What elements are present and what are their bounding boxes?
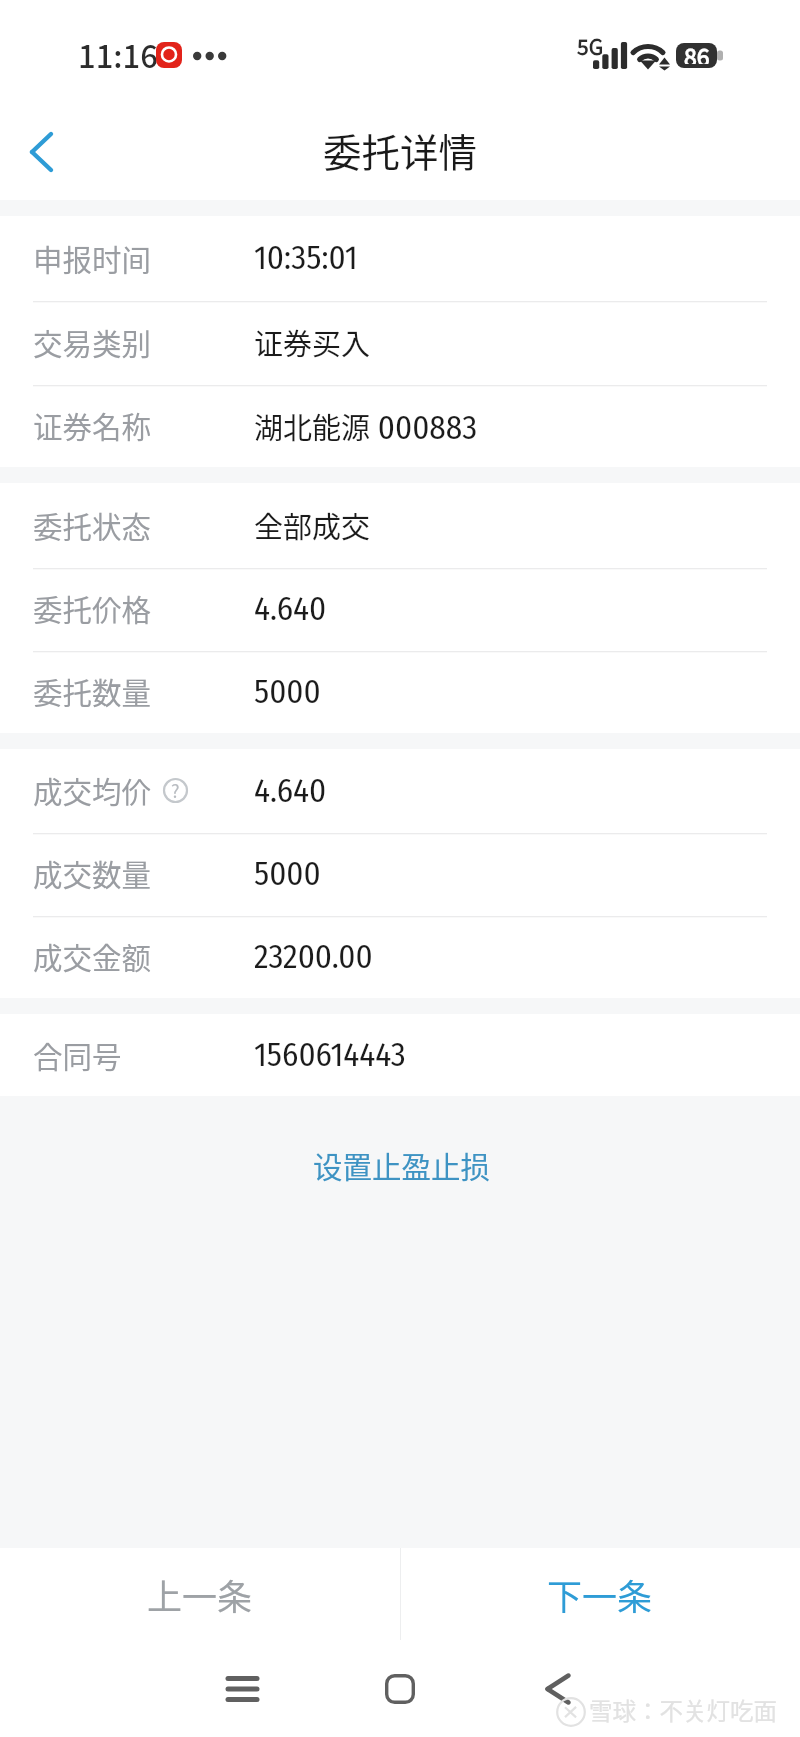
staticText: 5G xyxy=(577,31,604,61)
staticText: 上一条 xyxy=(147,1569,253,1620)
staticText: 下一条 xyxy=(547,1569,653,1620)
button[interactable]: 成交均价 xyxy=(0,749,800,832)
button[interactable]: 合同号 xyxy=(0,1014,800,1096)
staticText: 委托状态 xyxy=(33,504,152,547)
staticText: 5000 xyxy=(254,672,321,712)
button[interactable]: Home xyxy=(362,1651,438,1727)
staticText: 成交金额 xyxy=(33,935,152,978)
staticText: 11:16 xyxy=(78,32,158,77)
button[interactable]: 证券名称 xyxy=(0,384,800,467)
button[interactable]: Back xyxy=(0,100,86,200)
button[interactable]: 委托数量 xyxy=(0,650,800,733)
button[interactable]: 交易类别 xyxy=(0,300,800,384)
staticText: 4.640 xyxy=(254,589,327,629)
staticText: 委托详情 xyxy=(323,122,478,178)
button[interactable]: 下一条 xyxy=(400,1548,800,1640)
button[interactable]: 委托状态 xyxy=(0,483,800,567)
staticText: 23200.00 xyxy=(254,937,373,977)
staticText: 设置止盈止损 xyxy=(313,1144,491,1187)
staticText: 全部成交 xyxy=(254,504,371,546)
staticText: 湖北能源 000883 xyxy=(254,405,478,447)
staticText: ? xyxy=(171,777,180,802)
staticText: 交易类别 xyxy=(33,321,152,364)
button[interactable]: 成交金额 xyxy=(0,915,800,998)
staticText: 委托数量 xyxy=(33,670,152,713)
button[interactable]: Recent apps xyxy=(204,1651,280,1727)
staticText: 成交数量 xyxy=(33,852,152,895)
staticText: 证券买入 xyxy=(254,321,371,363)
button[interactable]: 申报时间 xyxy=(0,216,800,300)
staticText: 成交均价 xyxy=(33,769,152,812)
staticText: 10:35:01 xyxy=(254,238,358,278)
button[interactable]: Back xyxy=(520,1651,596,1727)
button[interactable]: 设置止盈止损 xyxy=(265,1130,539,1201)
button[interactable]: 上一条 xyxy=(0,1548,400,1640)
staticText: 86 xyxy=(684,39,710,64)
staticText: 申报时间 xyxy=(33,237,152,280)
staticText: 4.640 xyxy=(254,771,327,811)
staticText: 5000 xyxy=(254,854,321,894)
staticText: 雪球：不关灯吃面 xyxy=(589,1693,777,1727)
staticText: 合同号 xyxy=(33,1034,122,1077)
button[interactable]: 委托价格 xyxy=(0,567,800,650)
staticText: 证券名称 xyxy=(33,404,152,447)
staticText: 1560614443 xyxy=(254,1035,406,1075)
staticText: 委托价格 xyxy=(33,587,152,630)
button[interactable]: 成交数量 xyxy=(0,832,800,915)
